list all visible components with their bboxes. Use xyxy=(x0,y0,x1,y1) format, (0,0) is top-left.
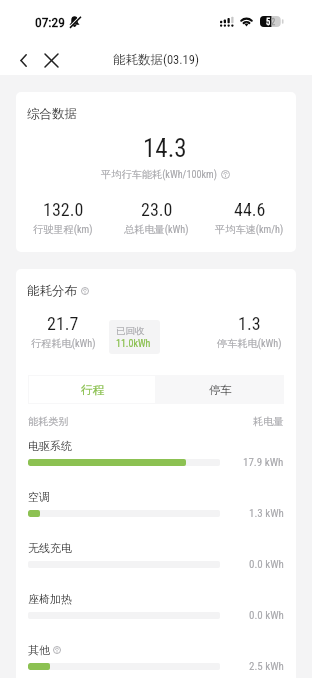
staticText: 14.3 xyxy=(143,134,187,163)
staticText: 11.0kWh xyxy=(116,338,151,350)
staticText: 132.0 xyxy=(43,199,84,220)
staticText: 停车耗电(kWh) xyxy=(217,337,282,350)
button[interactable]: Back xyxy=(10,47,36,73)
staticText: 电驱系统 xyxy=(28,439,72,453)
staticText: 07:29 xyxy=(35,14,65,30)
staticText: 能耗类别 xyxy=(28,415,69,428)
staticText: 耗电量 xyxy=(253,415,284,428)
staticText: 23.0 xyxy=(141,199,173,220)
button[interactable]: 停车 xyxy=(156,375,284,404)
staticText: 平均行车能耗(kWh/100km) xyxy=(101,168,217,181)
staticText: 停车 xyxy=(209,383,232,397)
staticText: 无线充电 xyxy=(28,541,72,555)
staticText: 行驶里程(km) xyxy=(33,223,93,236)
staticText: 2.5 kWh xyxy=(249,660,284,673)
button[interactable]: 行程 xyxy=(29,376,155,403)
staticText: 能耗分布 xyxy=(27,283,77,299)
staticText: 座椅加热 xyxy=(28,592,72,606)
staticText: 0.0 kWh xyxy=(249,609,284,622)
staticText: 1.3 kWh xyxy=(249,507,284,520)
staticText: 行程 xyxy=(81,383,104,397)
staticText: 1.3 xyxy=(238,313,261,334)
staticText: 21.7 xyxy=(47,313,79,334)
staticText: 0.0 kWh xyxy=(249,558,284,571)
staticText: 总耗电量(kWh) xyxy=(124,223,189,236)
staticText: 综合数据 xyxy=(27,106,77,122)
button[interactable]: Close xyxy=(38,47,64,73)
staticText: 17.9 kWh xyxy=(243,456,284,469)
staticText: 空调 xyxy=(28,490,50,504)
staticText: 平均车速(km/h) xyxy=(215,223,284,236)
button[interactable] xyxy=(28,375,156,404)
staticText: 已回收 xyxy=(116,325,145,337)
staticText: 行程耗电(kWh) xyxy=(31,337,96,350)
staticText: 能耗数据(03.19) xyxy=(113,52,199,68)
staticText: 5 xyxy=(266,17,271,27)
staticText: 其他 xyxy=(28,643,50,657)
staticText: 44.6 xyxy=(234,199,266,220)
staticText: 2 xyxy=(271,17,276,27)
